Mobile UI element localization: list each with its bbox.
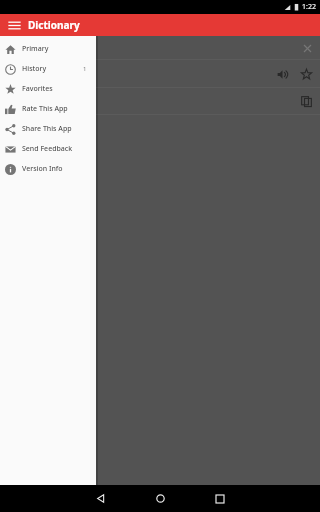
button[interactable]: Version Info [0, 159, 96, 179]
button[interactable]: History [0, 59, 96, 79]
staticText: Dictionary [28, 18, 80, 32]
staticText: Share This App [22, 124, 72, 134]
button[interactable]: Home [133, 485, 187, 512]
button[interactable]: Rate This App [0, 99, 96, 119]
staticText: 1 [83, 65, 87, 73]
staticText: Version Info [22, 164, 63, 174]
button[interactable]: Primary [0, 39, 96, 59]
button[interactable]: Favorite [296, 64, 316, 84]
staticText: History [22, 64, 47, 74]
button[interactable]: Copy [296, 91, 316, 111]
staticText: Send Feedback [22, 144, 73, 154]
button[interactable]: Send Feedback [0, 139, 96, 159]
button[interactable]: Pronounce [272, 64, 292, 84]
button[interactable]: Share This App [0, 119, 96, 139]
button[interactable]: Back [73, 485, 127, 512]
staticText: Primary [22, 44, 49, 54]
staticText: 1:22 [302, 2, 316, 12]
button[interactable]: Recent apps [193, 485, 247, 512]
button[interactable]: Open navigation drawer [6, 17, 22, 33]
button[interactable]: Close [301, 42, 313, 54]
button[interactable]: Favorites [0, 79, 96, 99]
staticText: Rate This App [22, 104, 68, 114]
staticText: Favorites [22, 84, 53, 94]
